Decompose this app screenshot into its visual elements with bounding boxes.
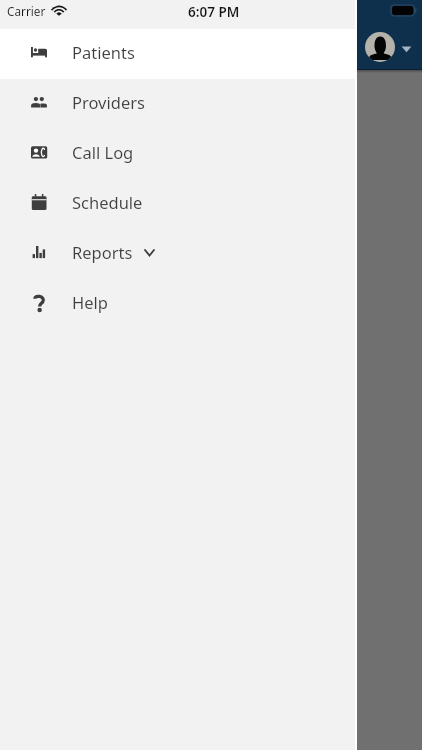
staticText: Call Log — [72, 141, 134, 163]
button[interactable]: Patients — [0, 29, 355, 79]
staticText: Carrier — [7, 3, 46, 19]
staticText: 6:07 PM — [188, 3, 240, 21]
button[interactable]: Help — [0, 279, 355, 329]
button[interactable]: Call Log — [0, 129, 355, 179]
staticText: Help — [72, 291, 108, 313]
button[interactable]: Schedule — [0, 179, 355, 229]
staticText: Schedule — [72, 191, 143, 213]
button[interactable]: Reports — [0, 229, 355, 279]
staticText: Patients — [72, 41, 135, 63]
button[interactable]: Providers — [0, 79, 355, 129]
button[interactable]: Account menu — [401, 46, 412, 53]
staticText: Providers — [72, 91, 145, 113]
staticText: Reports — [72, 241, 133, 263]
button[interactable]: Profile — [365, 32, 395, 62]
